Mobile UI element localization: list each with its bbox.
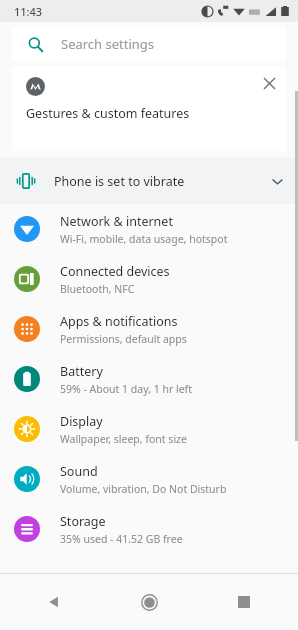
button[interactable]: Search settings	[12, 27, 286, 61]
staticText: Wi-Fi, mobile, data usage, hotspot	[60, 232, 228, 246]
staticText: Battery	[60, 363, 103, 380]
staticText: Apps & notifications	[60, 313, 178, 330]
staticText: Connected devices	[60, 263, 170, 280]
staticText: Phone is set to vibrate	[54, 173, 271, 190]
button[interactable]: Connected devices	[0, 254, 298, 304]
staticText: Wallpaper, sleep, font size	[60, 432, 187, 446]
button[interactable]: Battery	[0, 354, 298, 404]
button[interactable]: Apps & notifications	[0, 304, 298, 354]
staticText: Network & internet	[60, 213, 173, 230]
staticText: Display	[60, 413, 103, 430]
button[interactable]: Network & internet	[0, 204, 298, 254]
button[interactable]: Gestures & custom features	[12, 66, 286, 151]
staticText: Permissions, default apps	[60, 332, 187, 346]
button[interactable]: Storage	[0, 504, 298, 554]
staticText: Sound	[60, 463, 98, 480]
button[interactable]: Recent apps	[220, 578, 268, 626]
button[interactable]: Home	[125, 578, 173, 626]
staticText: Storage	[60, 513, 106, 530]
staticText: Search settings	[61, 35, 155, 53]
staticText: 35% used - 41.52 GB free	[60, 532, 183, 546]
button[interactable]: Display	[0, 404, 298, 454]
staticText: Volume, vibration, Do Not Disturb	[60, 482, 227, 496]
staticText: Bluetooth, NFC	[60, 282, 135, 296]
staticText: 59% - About 1 day, 1 hr left	[60, 382, 192, 396]
button[interactable]: Back	[30, 578, 78, 626]
staticText: Gestures & custom features	[26, 105, 190, 122]
button[interactable]: Sound	[0, 454, 298, 504]
button[interactable]: Phone is set to vibrate	[0, 158, 298, 204]
button[interactable]: Dismiss	[252, 66, 286, 100]
staticText: 11:43	[14, 4, 43, 19]
